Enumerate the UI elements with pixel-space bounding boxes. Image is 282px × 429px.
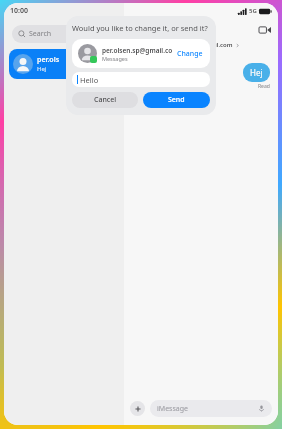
- staticText: per.olsen.sp@gmail.com: [162, 41, 233, 49]
- other: Dictate: [258, 405, 265, 412]
- staticText: per.olsen.sp@gmail.com: [102, 46, 173, 55]
- button[interactable]: Cancel: [72, 92, 138, 108]
- button[interactable]: Hello: [72, 72, 210, 87]
- button[interactable]: Add attachment: [130, 401, 145, 416]
- staticText: 5G: [249, 7, 257, 15]
- staticText: Read: [258, 83, 270, 90]
- button[interactable]: Contact: [191, 19, 211, 39]
- button[interactable]: iMessage: [150, 400, 272, 417]
- button[interactable]: per.olsen.sp@gmail.com: [72, 39, 210, 68]
- staticText: Send: [168, 95, 185, 105]
- staticText: Hello: [80, 75, 99, 85]
- button[interactable]: Change: [176, 48, 204, 60]
- staticText: Hej: [37, 65, 47, 73]
- staticText: per.ols: [37, 55, 60, 65]
- button[interactable]: Send: [143, 92, 210, 108]
- staticText: Search: [29, 29, 52, 39]
- staticText: Hej: [250, 67, 263, 78]
- button[interactable]: Search: [12, 25, 116, 43]
- button[interactable]: per.ols: [9, 49, 119, 79]
- staticText: Change: [177, 49, 203, 59]
- staticText: iMessage: [157, 404, 188, 414]
- button[interactable]: Video call: [258, 23, 272, 37]
- staticText: Messages: [102, 55, 128, 62]
- staticText: Would you like to change it, or send it?: [72, 23, 208, 33]
- staticText: 10:00: [10, 6, 28, 16]
- staticText: Cancel: [94, 95, 117, 105]
